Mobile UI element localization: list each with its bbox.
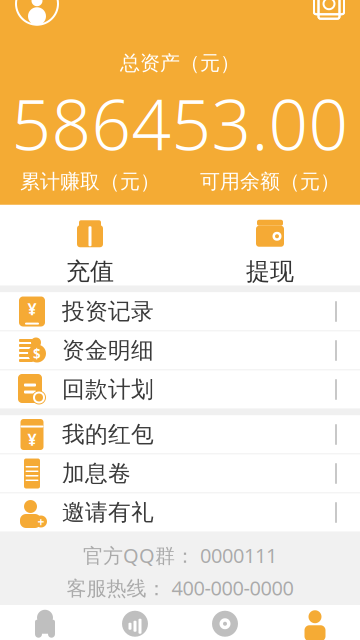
button[interactable]: 首页 <box>0 605 90 640</box>
staticText: 官方QQ群： 0000111 <box>83 542 277 568</box>
button[interactable]: 投资 <box>90 605 180 640</box>
button[interactable]: 提现 <box>180 205 360 298</box>
staticText: 邀请有礼 <box>62 499 154 526</box>
button[interactable]: ¥ <box>0 292 360 330</box>
staticText: ¥ <box>27 429 36 450</box>
staticText: 总资产（元） <box>120 51 240 75</box>
staticText: $ <box>33 345 41 362</box>
button[interactable]: 发现 <box>180 605 270 640</box>
staticText: 586453.00 <box>11 77 348 169</box>
staticText: 累计赚取（元） <box>20 169 160 194</box>
staticText: + <box>37 513 44 529</box>
staticText: 客服热线： 400-000-0000 <box>66 574 293 601</box>
staticText: 资金明细 <box>62 337 154 364</box>
staticText: 加息卷 <box>62 460 131 487</box>
button[interactable]: 我的 <box>270 605 360 640</box>
button[interactable]: + <box>0 493 360 531</box>
button[interactable]: 回款计划 <box>0 370 360 408</box>
staticText: 充值 <box>66 257 114 286</box>
button[interactable]: Profile <box>14 0 60 27</box>
staticText: ¥ <box>27 298 36 320</box>
staticText: 85469.54 <box>45 200 135 228</box>
button[interactable]: 充值 <box>0 205 180 298</box>
button[interactable]: $ <box>0 331 360 369</box>
staticText: 我的红包 <box>62 421 154 448</box>
staticText: 投资记录 <box>62 298 154 325</box>
staticText: 85469.54 <box>225 200 315 228</box>
button[interactable]: 加息卷 <box>0 454 360 492</box>
button[interactable]: ¥ <box>0 415 360 453</box>
button[interactable]: Settings <box>312 0 346 21</box>
staticText: 提现 <box>246 257 294 286</box>
staticText: 可用余额（元） <box>200 169 340 194</box>
staticText: 回款计划 <box>62 376 154 403</box>
